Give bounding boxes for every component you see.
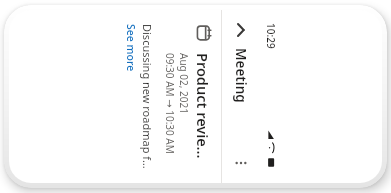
staticText: 10:29 (264, 23, 278, 49)
button[interactable]: Product review for Contoso (163, 10, 213, 183)
staticText: See more (124, 24, 138, 72)
staticText: Meeting (232, 48, 250, 103)
button[interactable]: Collapse (226, 15, 256, 45)
staticText: Product review for Contoso (193, 53, 213, 169)
staticText: Aug 02, 2021 (177, 53, 191, 114)
button[interactable]: More options (226, 148, 256, 178)
staticText: 09:30 AM → 10:30 AM (163, 53, 177, 154)
button[interactable]: See more (124, 24, 138, 72)
staticText: Discussing new roadmap for our compan... (140, 24, 155, 169)
